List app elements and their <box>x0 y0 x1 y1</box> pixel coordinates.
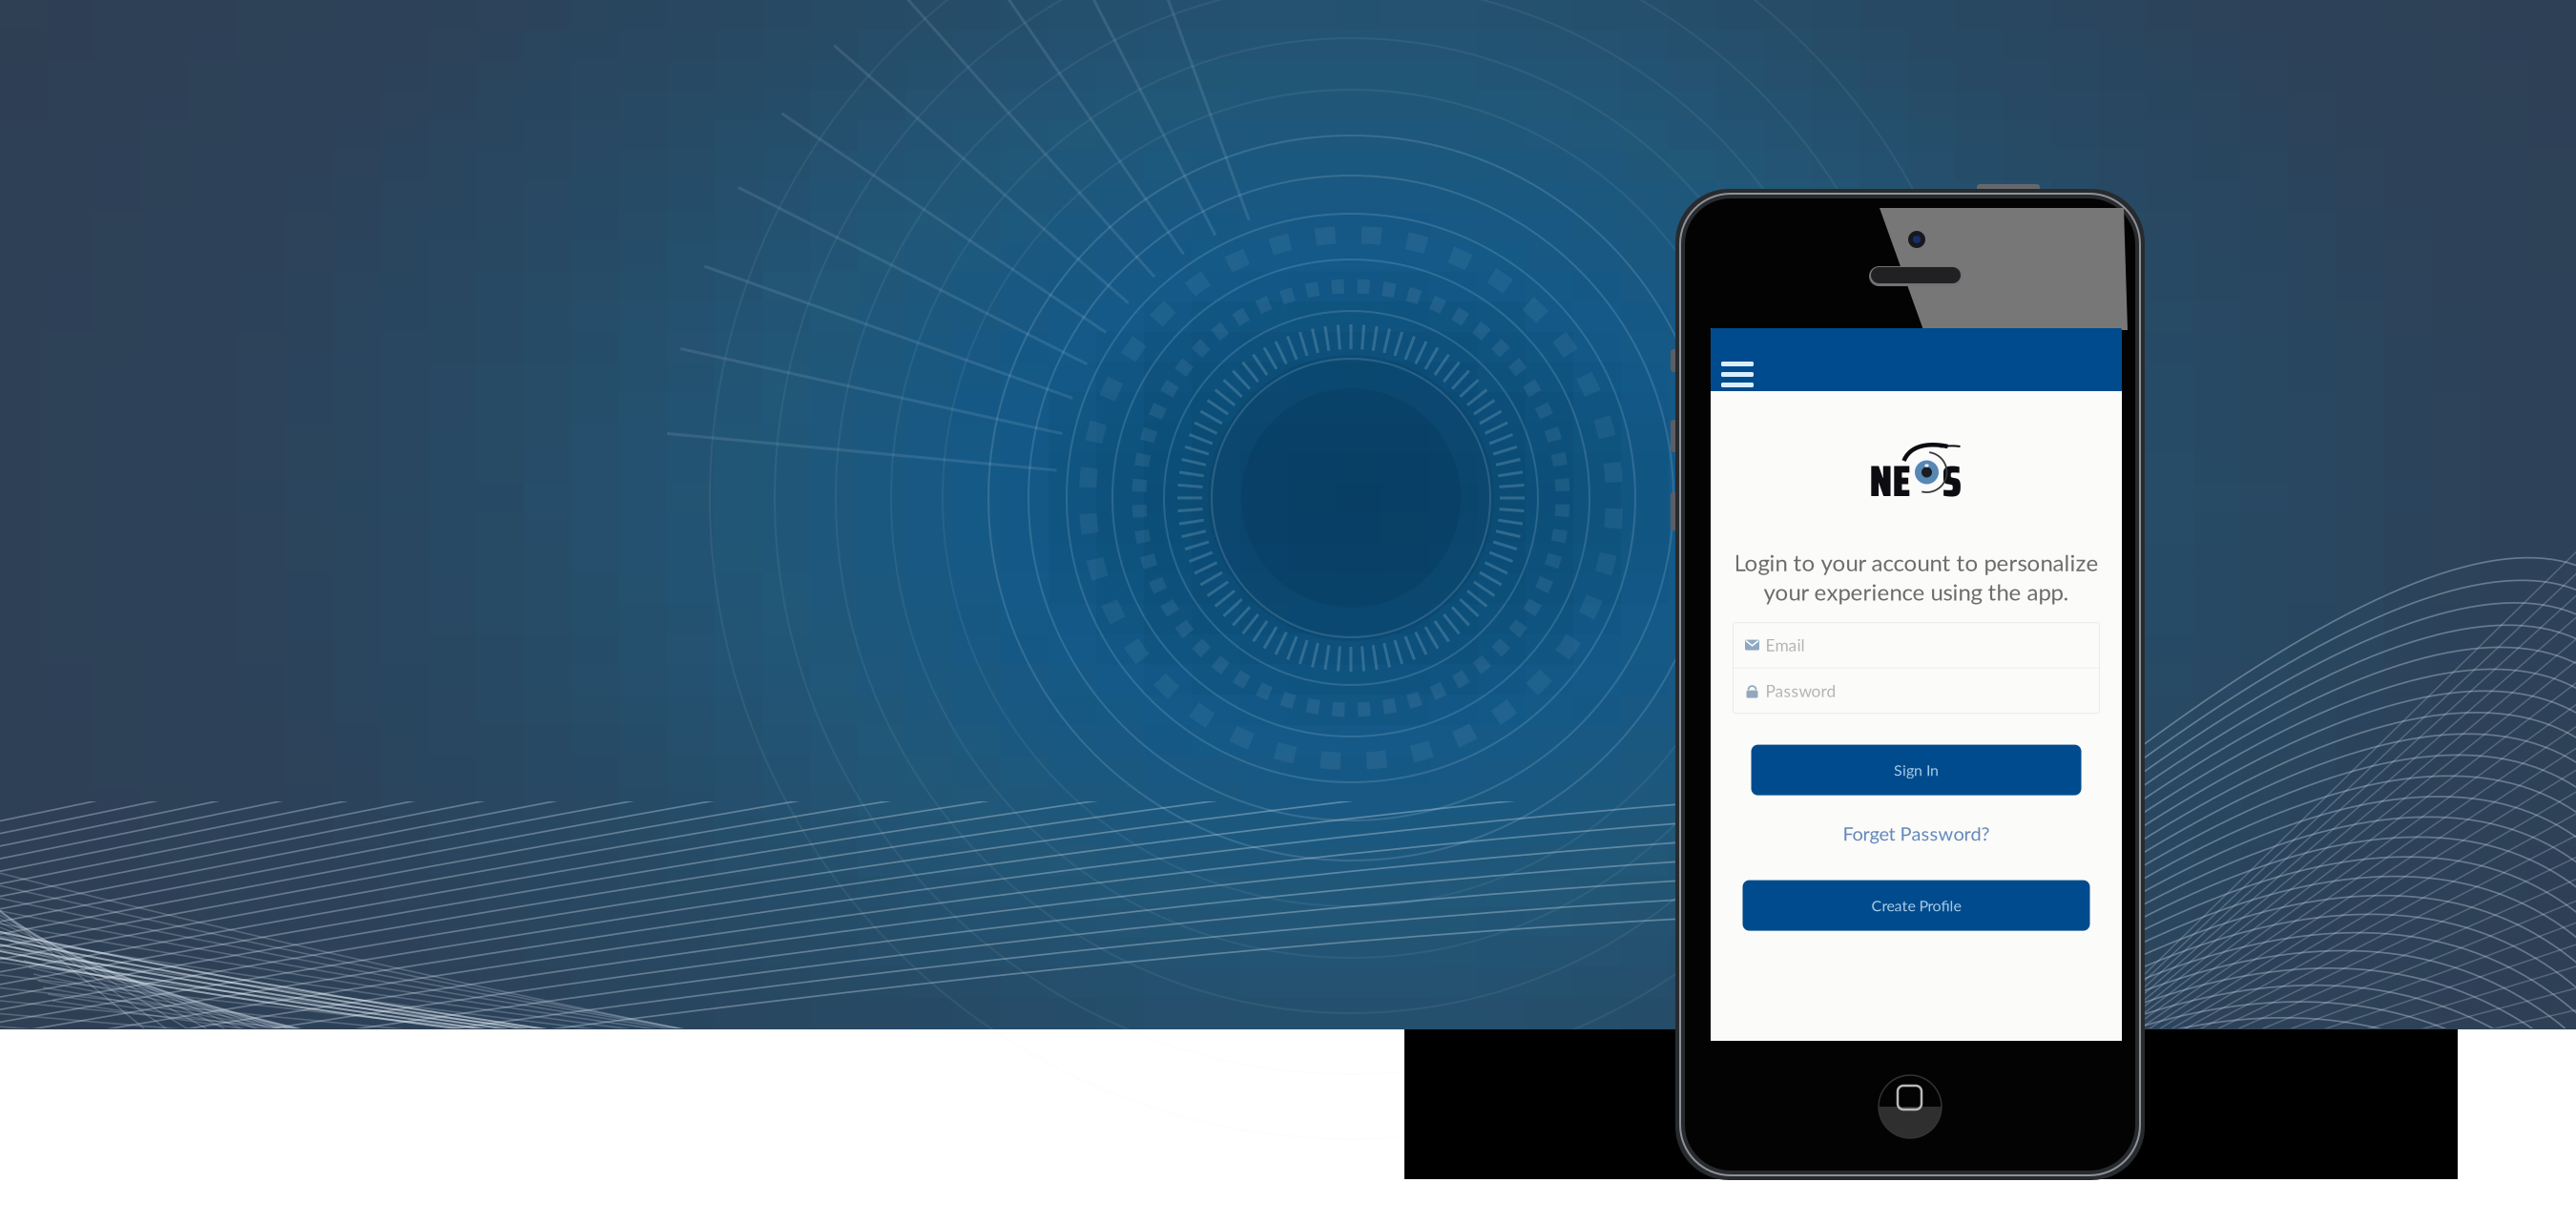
staticText: your experience using the app. <box>1764 578 2069 605</box>
staticText: Login to your account to personalize <box>1734 549 2098 576</box>
staticText: Sign In <box>1894 761 1939 779</box>
button[interactable]: Menu <box>1711 328 2122 391</box>
button[interactable]: Sign In <box>1751 745 2081 795</box>
button[interactable]: Create Profile <box>1743 880 2090 931</box>
staticText: Email <box>1766 635 1805 655</box>
staticText: NE <box>1870 447 1911 516</box>
staticText: S <box>1942 447 1961 516</box>
staticText: Password <box>1766 681 1836 701</box>
button[interactable]: Forget Password? <box>1773 818 2059 849</box>
staticText: Create Profile <box>1871 896 1961 915</box>
staticText: Forget Password? <box>1843 822 1990 845</box>
